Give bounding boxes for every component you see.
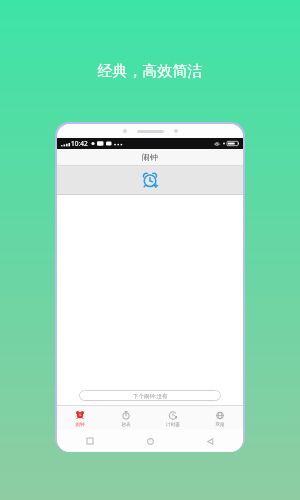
staticText: 闹钟 [142, 152, 158, 162]
staticText: 下个闹钟:没有 [133, 392, 168, 400]
button[interactable]: Home [143, 434, 157, 448]
button[interactable]: 闹钟 [57, 406, 103, 430]
button[interactable]: Recents [83, 434, 97, 448]
button[interactable]: Add alarm [57, 166, 243, 194]
button[interactable]: 计时器 [149, 406, 196, 430]
staticText: 闹钟 [75, 422, 85, 428]
button[interactable]: 下个闹钟:没有 [79, 390, 221, 401]
button[interactable]: 秒表 [103, 406, 149, 430]
staticText: 计时器 [166, 422, 180, 428]
button[interactable]: Back [203, 434, 217, 448]
staticText: 经典，高效简洁 [0, 62, 300, 81]
button[interactable]: 双闹 [196, 406, 243, 430]
staticText: 秒表 [121, 422, 131, 428]
staticText: 双闹 [215, 422, 225, 428]
staticText: 10:42 [71, 139, 88, 148]
